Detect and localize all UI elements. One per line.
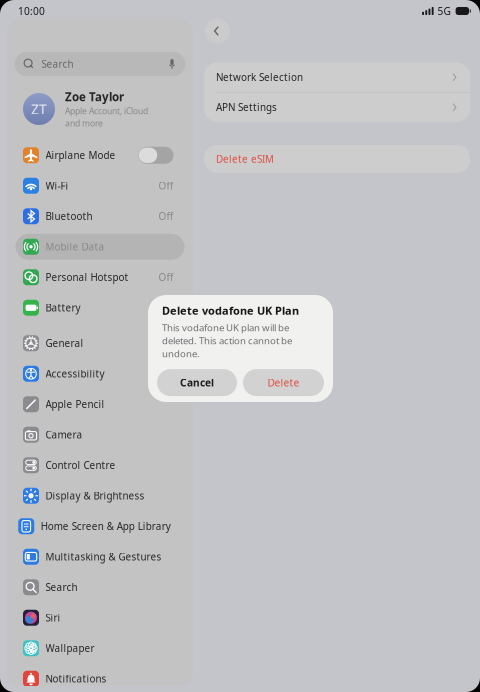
staticText: Notifications bbox=[45, 672, 106, 685]
staticText: General bbox=[45, 336, 83, 350]
button[interactable]: Network Selection bbox=[204, 62, 470, 92]
staticText: Home Screen & App Library bbox=[41, 519, 171, 533]
staticText: Search bbox=[45, 580, 77, 594]
button[interactable]: Personal Hotspot bbox=[15, 264, 184, 290]
staticText: Mobile Data bbox=[45, 240, 104, 253]
staticText: Accessibility bbox=[45, 367, 104, 380]
button[interactable]: Back bbox=[205, 18, 230, 43]
staticText: Apple Account, iCloud bbox=[65, 105, 148, 117]
staticText: Siri bbox=[45, 611, 60, 624]
staticText: Bluetooth bbox=[45, 209, 92, 223]
button[interactable]: Home Screen & App Library bbox=[15, 513, 184, 539]
button[interactable]: Accessibility bbox=[15, 361, 184, 387]
staticText: Wi-Fi bbox=[45, 179, 68, 192]
staticText: ZT bbox=[31, 100, 47, 118]
button[interactable]: Siri bbox=[15, 605, 184, 631]
button[interactable]: Search bbox=[15, 574, 184, 600]
staticText: Multitasking & Gestures bbox=[45, 550, 161, 563]
button[interactable]: Notifications bbox=[15, 666, 184, 692]
button[interactable]: ZT bbox=[12, 93, 188, 125]
button[interactable]: Bluetooth bbox=[15, 203, 184, 229]
staticText: and more bbox=[65, 117, 103, 129]
button[interactable]: Wi-Fi bbox=[15, 173, 184, 199]
staticText: Delete bbox=[267, 376, 299, 389]
staticText: Search bbox=[41, 57, 73, 71]
button[interactable]: Cancel bbox=[157, 369, 237, 396]
staticText: Camera bbox=[45, 428, 82, 441]
button[interactable]: Mobile Data bbox=[15, 234, 184, 260]
staticText: Personal Hotspot bbox=[45, 270, 128, 284]
button[interactable]: Display & Brightness bbox=[15, 483, 184, 509]
button[interactable]: Camera bbox=[15, 422, 184, 448]
staticText: Off bbox=[158, 209, 173, 223]
staticText: 5G bbox=[438, 4, 451, 18]
staticText: Display & Brightness bbox=[45, 489, 144, 502]
staticText: Airplane Mode bbox=[45, 148, 115, 162]
button[interactable]: Apple Pencil bbox=[15, 391, 184, 417]
staticText: Network Selection bbox=[216, 70, 303, 84]
staticText: Control Centre bbox=[45, 458, 115, 472]
button[interactable]: Delete bbox=[243, 369, 324, 396]
staticText: Delete eSIM bbox=[216, 152, 274, 166]
staticText: Off bbox=[158, 270, 173, 284]
staticText: Battery bbox=[45, 301, 80, 314]
button[interactable]: APN Settings bbox=[204, 92, 470, 122]
button[interactable]: General bbox=[15, 330, 184, 356]
staticText: Delete vodafone UK Plan bbox=[162, 303, 299, 318]
button[interactable]: Airplane Mode bbox=[15, 142, 184, 168]
staticText: This vodafone UK plan will be deleted. T… bbox=[162, 321, 292, 360]
button[interactable]: Delete eSIM bbox=[204, 145, 470, 173]
staticText: Apple Pencil bbox=[45, 397, 104, 411]
staticText: Off bbox=[158, 179, 173, 192]
button[interactable]: Battery bbox=[15, 295, 184, 321]
button[interactable]: Multitasking & Gestures bbox=[15, 544, 184, 570]
staticText: APN Settings bbox=[216, 100, 277, 114]
staticText: Zoe Taylor bbox=[65, 89, 124, 105]
staticText: Wallpaper bbox=[45, 641, 94, 655]
button[interactable]: Control Centre bbox=[15, 452, 184, 478]
button[interactable]: Wallpaper bbox=[15, 635, 184, 661]
staticText: 10:00 bbox=[18, 4, 45, 18]
staticText: Cancel bbox=[180, 376, 214, 389]
